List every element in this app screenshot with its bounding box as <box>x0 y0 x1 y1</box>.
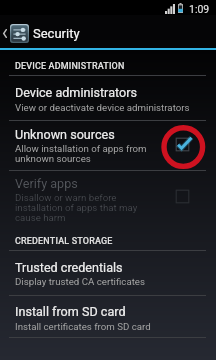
button[interactable]: Device administrators <box>0 76 216 120</box>
staticText: Trusted credentials <box>15 262 123 275</box>
button[interactable]: Verify apps <box>0 171 216 225</box>
button[interactable]: Unknown sources <box>170 132 194 156</box>
staticText: Disallow or warn before installation of … <box>15 193 138 223</box>
staticText: Verify apps <box>15 178 78 191</box>
staticText: Install certificates from SD card <box>15 322 151 332</box>
staticText: Device administrators <box>15 87 137 100</box>
staticText: 1:09 <box>189 3 210 15</box>
button[interactable]: Navigate up <box>0 15 29 46</box>
staticText: Unknown sources <box>15 129 115 142</box>
staticText: Install from SD card <box>15 306 126 319</box>
staticText: CREDENTIAL STORAGE <box>15 236 113 247</box>
staticText: Display trusted CA certificates <box>15 277 145 287</box>
staticText: DEVICE ADMINISTRATION <box>15 61 125 72</box>
staticText: Allow installation of apps from unknown … <box>15 144 147 164</box>
staticText: Security <box>33 26 80 41</box>
button[interactable]: Install from SD card <box>0 296 216 337</box>
button[interactable]: Trusted credentials <box>0 251 216 295</box>
staticText: View or deactivate device administrators <box>15 103 190 113</box>
button[interactable]: Unknown sources <box>0 121 216 170</box>
button[interactable]: Verify apps <box>170 184 194 208</box>
